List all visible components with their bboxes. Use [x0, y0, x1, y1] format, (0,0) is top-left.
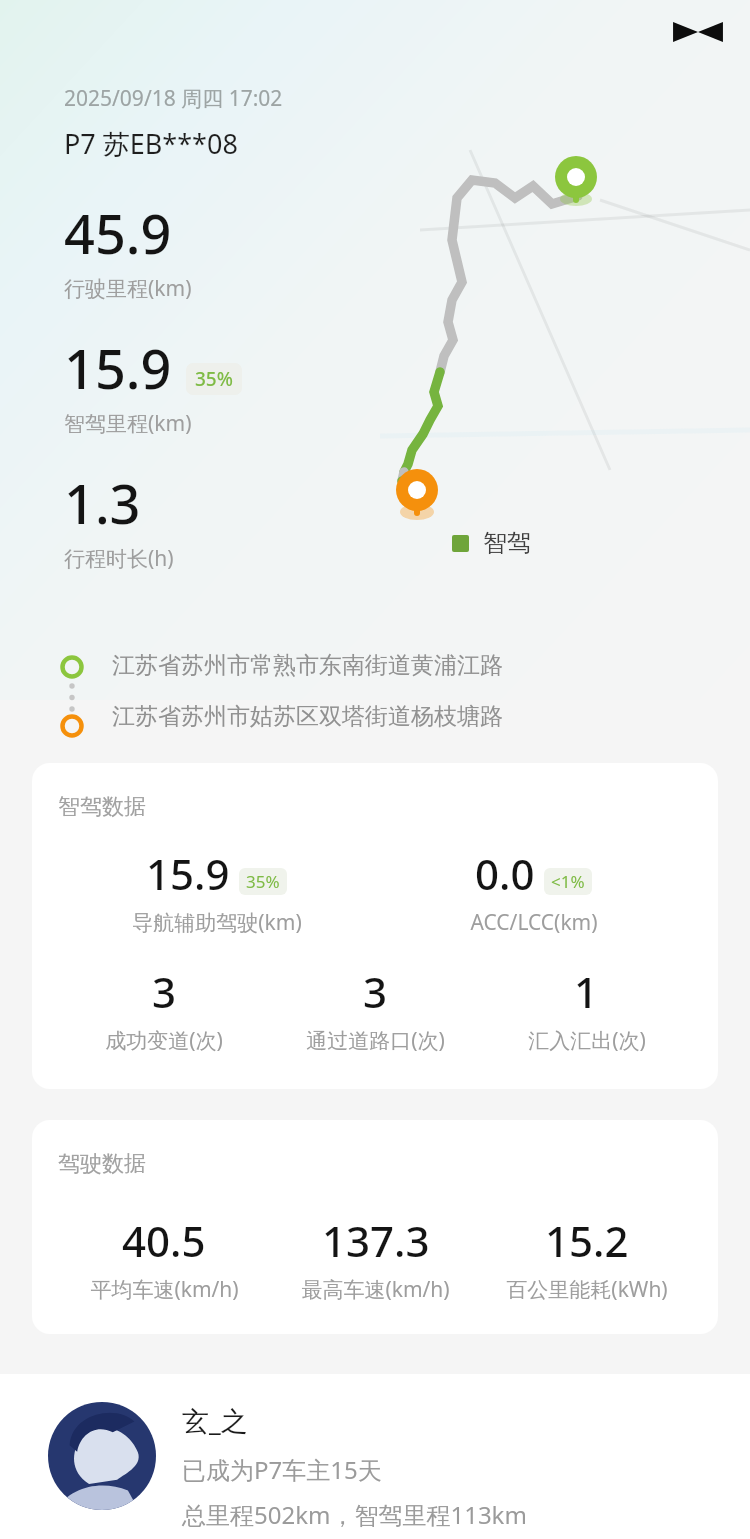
staticText: 智驾里程(km): [64, 409, 192, 438]
staticText: 智驾: [483, 528, 531, 558]
button[interactable]: XPeng: [670, 4, 726, 60]
staticText: <1%: [551, 870, 585, 893]
staticText: 1.3: [64, 466, 141, 540]
staticText: 百公里能耗(kWh): [506, 1275, 668, 1304]
staticText: 0.0: [475, 845, 535, 902]
button[interactable]: 玄_之: [0, 1374, 750, 1539]
staticText: 最高车速(km/h): [301, 1275, 450, 1304]
staticText: 汇入汇出(次): [528, 1026, 646, 1055]
staticText: 45.9: [64, 196, 172, 270]
staticText: 3: [363, 963, 388, 1020]
staticText: 1: [574, 963, 599, 1020]
staticText: 行驶里程(km): [64, 274, 192, 303]
staticText: 玄_之: [182, 1402, 248, 1439]
staticText: 江苏省苏州市常熟市东南街道黄浦江路: [112, 651, 503, 680]
staticText: 35%: [246, 870, 280, 893]
staticText: 驾驶数据: [58, 1150, 146, 1178]
staticText: 15.2: [545, 1212, 629, 1269]
staticText: 智驾数据: [58, 793, 146, 821]
staticText: 40.5: [122, 1212, 206, 1269]
staticText: 35%: [195, 366, 233, 392]
staticText: 137.3: [322, 1212, 430, 1269]
staticText: 平均车速(km/h): [90, 1275, 239, 1304]
button[interactable]: 驾驶数据: [32, 1120, 718, 1334]
staticText: 通过道路口(次): [306, 1026, 445, 1055]
staticText: 行程时长(h): [64, 544, 174, 573]
staticText: 导航辅助驾驶(km): [132, 908, 302, 937]
button[interactable]: 智驾数据: [32, 763, 718, 1089]
staticText: 3: [152, 963, 177, 1020]
staticText: 2025/09/18 周四 17:02: [64, 84, 283, 113]
staticText: 总里程502km，智驾里程113km: [182, 1498, 527, 1531]
staticText: 15.9: [64, 331, 172, 405]
staticText: 成功变道(次): [105, 1026, 223, 1055]
staticText: 已成为P7车主15天: [182, 1453, 382, 1486]
staticText: 15.9: [146, 845, 230, 902]
staticText: 江苏省苏州市姑苏区双塔街道杨枝塘路: [112, 702, 503, 731]
staticText: ACC/LCC(km): [470, 908, 598, 937]
button[interactable]: Trip map: [0, 0, 750, 700]
staticText: P7 苏EB***08: [64, 125, 238, 162]
